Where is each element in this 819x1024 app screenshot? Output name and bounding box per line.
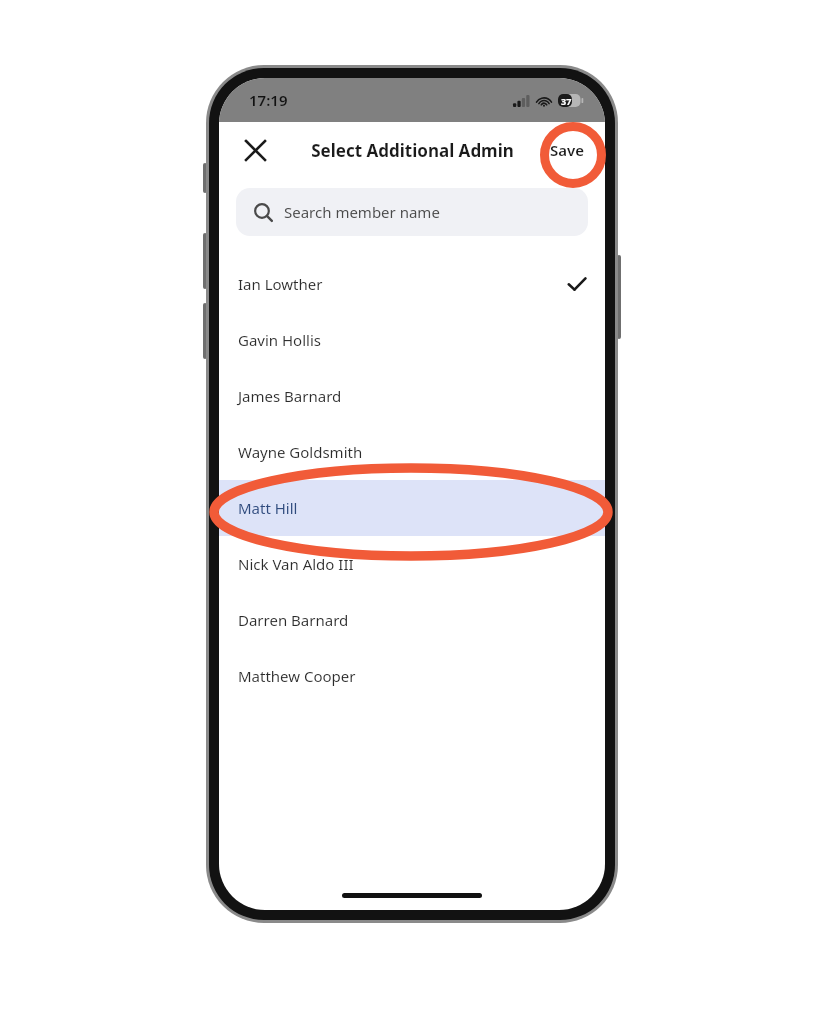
button[interactable]: Matthew Cooper	[219, 648, 605, 704]
button[interactable]: Nick Van Aldo III	[219, 536, 605, 592]
staticText: 17:19	[249, 90, 288, 110]
staticText: Search member name	[284, 202, 440, 222]
button[interactable]: Ian Lowther	[219, 256, 605, 312]
button[interactable]: James Barnard	[219, 368, 605, 424]
staticText: Select Additional Admin	[311, 139, 514, 162]
staticText: Matthew Cooper	[238, 666, 356, 686]
button[interactable]: Search member name	[236, 188, 588, 236]
staticText: James Barnard	[238, 386, 342, 406]
button[interactable]: Close	[235, 130, 275, 170]
button[interactable]: Matt Hill	[219, 480, 605, 536]
button[interactable]: Gavin Hollis	[219, 312, 605, 368]
button[interactable]: Darren Barnard	[219, 592, 605, 648]
staticText: Nick Van Aldo III	[238, 554, 354, 574]
staticText: Ian Lowther	[238, 274, 323, 294]
staticText: Darren Barnard	[238, 610, 349, 630]
button[interactable]: Wayne Goldsmith	[219, 424, 605, 480]
staticText: Gavin Hollis	[238, 330, 321, 350]
button[interactable]: Save	[544, 134, 591, 166]
staticText: Matt Hill	[238, 498, 298, 518]
staticText: Wayne Goldsmith	[238, 442, 363, 462]
staticText: 37	[561, 95, 572, 107]
staticText: Save	[550, 140, 585, 160]
